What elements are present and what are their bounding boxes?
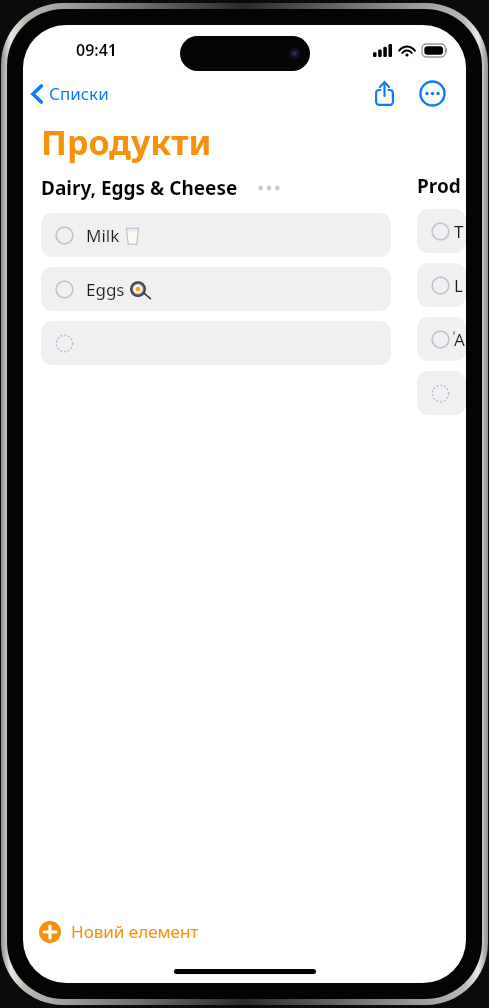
staticText: Продукти — [41, 119, 212, 165]
button[interactable]: Lettuce — [417, 263, 466, 307]
button[interactable]: Новий елемент — [23, 912, 215, 951]
staticText: Списки — [49, 82, 109, 105]
button[interactable]: More options — [412, 73, 452, 113]
button[interactable]: Tomatoes — [417, 209, 466, 253]
staticText: Eggs — [86, 278, 125, 301]
staticText: 09:41 — [76, 39, 118, 61]
staticText: Dairy, Eggs & Cheese — [41, 175, 238, 201]
button[interactable]: Section options — [252, 173, 286, 203]
staticText: Новий елемент — [71, 920, 199, 943]
button[interactable]: Eggs — [41, 267, 391, 311]
staticText: Milk — [86, 224, 120, 247]
button[interactable]: Списки — [23, 78, 119, 109]
button[interactable]: Share — [364, 73, 404, 113]
button[interactable]: Milk — [41, 213, 391, 257]
button[interactable] — [417, 371, 466, 415]
staticText: Produce — [417, 173, 466, 199]
button[interactable]: Apples — [417, 317, 466, 361]
